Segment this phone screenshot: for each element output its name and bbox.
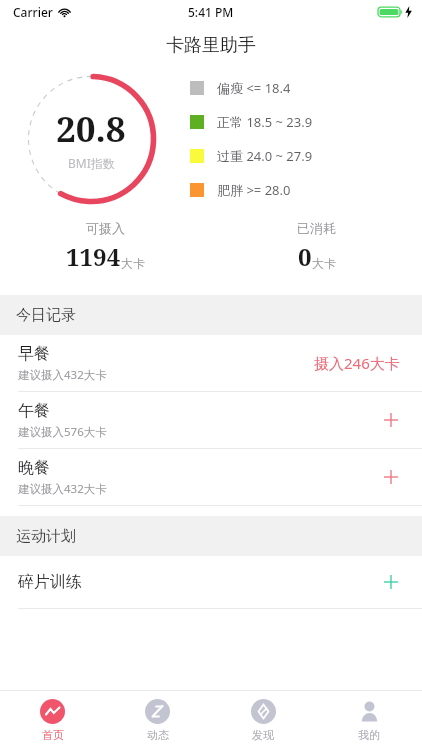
staticText: 1194	[66, 240, 121, 273]
staticText: 午餐	[18, 401, 50, 421]
staticText: 今日记录	[16, 306, 76, 325]
staticText: 建议摄入576大卡	[18, 424, 107, 440]
staticText: 碎片训练	[18, 572, 82, 592]
staticText: 已消耗	[297, 220, 336, 236]
button[interactable]: 午餐	[0, 392, 422, 448]
staticText: 大卡	[312, 256, 336, 271]
staticText: 0	[298, 240, 312, 273]
staticText: 卡路里助手	[166, 34, 256, 57]
button[interactable]: 首页	[0, 691, 105, 750]
button[interactable]: 发现	[210, 691, 316, 750]
staticText: 晚餐	[18, 458, 50, 478]
button[interactable]: 碎片训练	[0, 556, 422, 608]
staticText: 动态	[147, 728, 169, 742]
staticText: 可摄入	[86, 220, 125, 236]
staticText: 过重 24.0 ~ 27.9	[217, 147, 313, 165]
staticText: 20.8	[56, 105, 126, 153]
button[interactable]: 添加午餐	[378, 407, 404, 433]
button[interactable]: 我的	[316, 691, 422, 750]
staticText: 运动计划	[16, 527, 76, 546]
staticText: 首页	[42, 728, 64, 742]
staticText: 我的	[358, 728, 380, 742]
staticText: 偏瘦 <= 18.4	[217, 79, 291, 97]
button[interactable]: 添加碎片训练	[378, 569, 404, 595]
staticText: 发现	[252, 728, 274, 742]
staticText: 大卡	[121, 256, 145, 271]
staticText: Carrier	[13, 4, 53, 20]
button[interactable]: 晚餐	[0, 449, 422, 505]
staticText: 建议摄入432大卡	[18, 481, 107, 497]
button[interactable]: 动态	[105, 691, 210, 750]
staticText: 肥胖 >= 28.0	[217, 181, 291, 199]
staticText: 建议摄入432大卡	[18, 367, 107, 383]
staticText: 5:41 PM	[188, 4, 234, 20]
staticText: 早餐	[18, 344, 50, 364]
staticText: 摄入246大卡	[314, 353, 400, 373]
staticText: BMI指数	[68, 155, 115, 171]
button[interactable]: 添加晚餐	[378, 464, 404, 490]
staticText: 正常 18.5 ~ 23.9	[217, 113, 313, 131]
button[interactable]: 早餐	[0, 335, 422, 391]
